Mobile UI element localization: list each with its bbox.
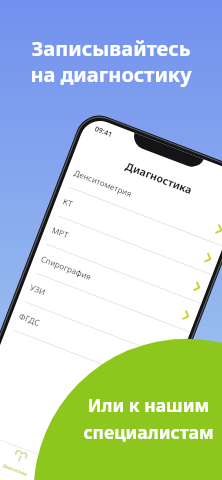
staticText: Или к нашим специалистам: [83, 393, 214, 444]
staticText: Записывайтесь на диагностику: [30, 35, 192, 88]
